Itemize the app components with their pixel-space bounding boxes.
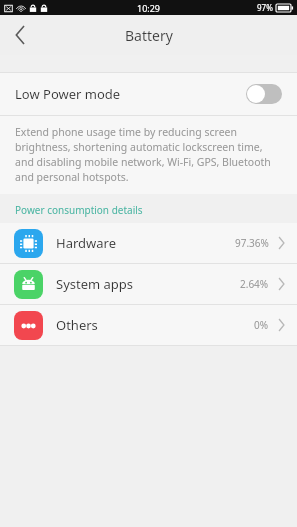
staticText: 97%	[257, 2, 273, 13]
staticText: Extend phone usage time by reducing scre…	[15, 125, 283, 184]
staticText: Others	[56, 316, 98, 334]
staticText: Power consumption details	[15, 203, 143, 217]
staticText: System apps	[56, 275, 134, 293]
button[interactable]: Others	[0, 305, 297, 345]
staticText: Battery	[125, 26, 173, 45]
staticText: Low Power mode	[15, 85, 121, 103]
staticText: 10:29	[137, 2, 161, 14]
staticText: 0%	[254, 318, 269, 332]
staticText: Hardware	[56, 234, 116, 252]
button[interactable]: System apps	[0, 264, 297, 304]
button[interactable]: Hardware	[0, 223, 297, 263]
button[interactable]: Low Power mode toggle	[246, 84, 282, 104]
button[interactable]: Back	[0, 15, 40, 55]
button[interactable]: Low Power mode	[0, 73, 297, 115]
staticText: 2.64%	[240, 277, 269, 291]
staticText: 97.36%	[235, 236, 269, 250]
